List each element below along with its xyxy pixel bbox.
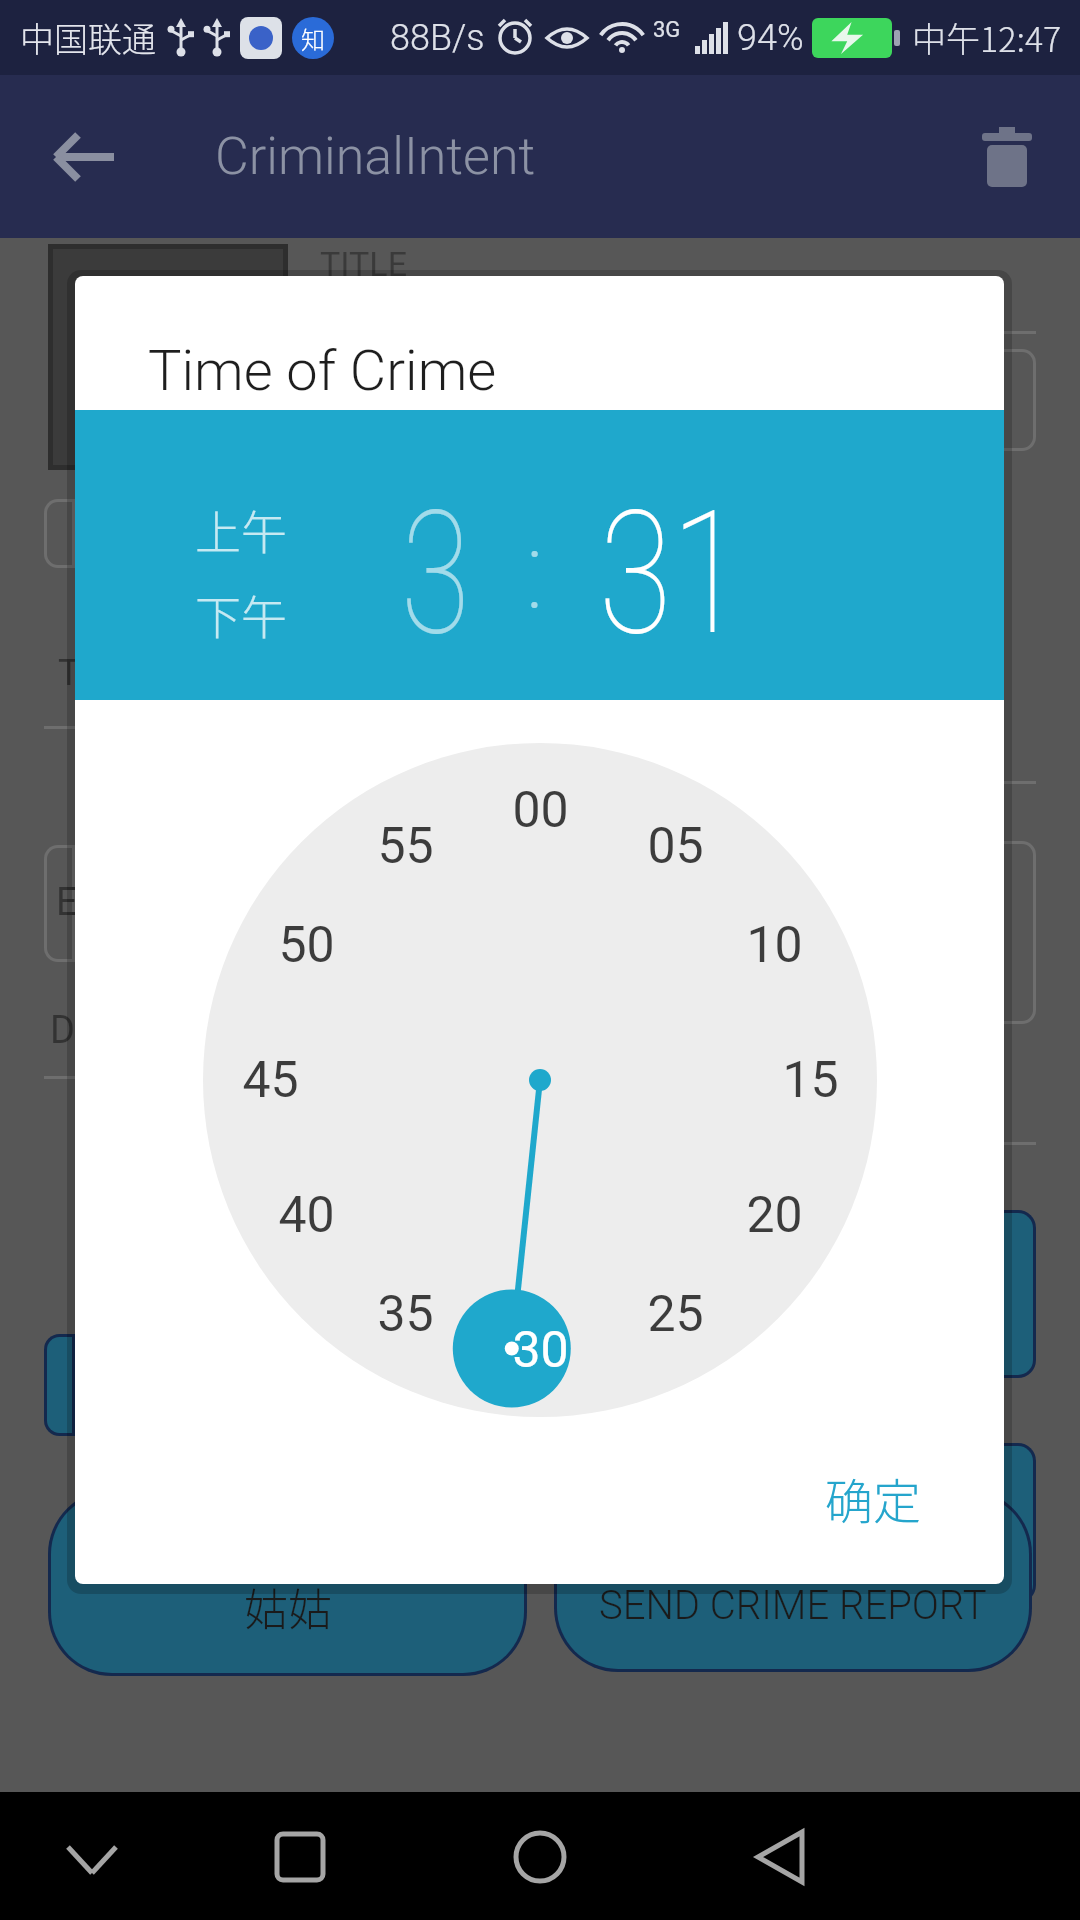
staticText: 05 xyxy=(647,817,704,876)
staticText: 45 xyxy=(242,1051,299,1110)
staticText: 94% xyxy=(737,17,804,59)
staticText: 中午12:47 xyxy=(912,13,1062,62)
staticText: TITLE xyxy=(320,244,407,284)
staticText: 00 xyxy=(512,781,569,840)
staticText: 3G xyxy=(653,17,681,43)
button[interactable]: 姑姑 xyxy=(51,1493,524,1673)
staticText: 姑姑 xyxy=(244,1575,332,1639)
staticText: T xyxy=(58,652,80,694)
staticText: 10 xyxy=(746,916,803,975)
staticText: 55 xyxy=(377,817,434,876)
staticText: CriminalIntent xyxy=(215,126,536,187)
button[interactable]: SEND CRIME REPORT xyxy=(557,1493,1029,1669)
staticText: 中国联通 xyxy=(20,13,156,62)
button[interactable]: 3 xyxy=(401,474,471,673)
staticText: 35 xyxy=(377,1285,434,1344)
button[interactable]: 31 xyxy=(599,474,745,673)
staticText: 88B/s xyxy=(390,17,485,59)
button[interactable] xyxy=(248,1825,352,1889)
staticText: 知 xyxy=(301,21,325,56)
button[interactable] xyxy=(728,1825,832,1889)
button[interactable] xyxy=(0,75,170,238)
staticText: SEND CRIME REPORT xyxy=(599,1582,987,1629)
staticText: E xyxy=(56,880,78,925)
button[interactable] xyxy=(934,75,1080,238)
staticText: Time of Crime xyxy=(148,338,497,404)
staticText: 20 xyxy=(746,1186,803,1245)
staticText: 25 xyxy=(647,1285,704,1344)
staticText: 确定 xyxy=(825,1463,922,1533)
staticText: 40 xyxy=(278,1186,335,1245)
staticText: D xyxy=(50,1008,75,1053)
staticText: 30 xyxy=(512,1321,569,1380)
staticText: : xyxy=(525,506,545,635)
staticText: 50 xyxy=(278,916,335,975)
button[interactable]: 确定 xyxy=(763,1448,983,1548)
button[interactable] xyxy=(488,1825,592,1889)
button[interactable]: 下午 xyxy=(195,581,287,648)
button[interactable] xyxy=(40,1830,144,1890)
button[interactable]: 上午 xyxy=(195,496,287,563)
staticText: 15 xyxy=(782,1051,839,1110)
